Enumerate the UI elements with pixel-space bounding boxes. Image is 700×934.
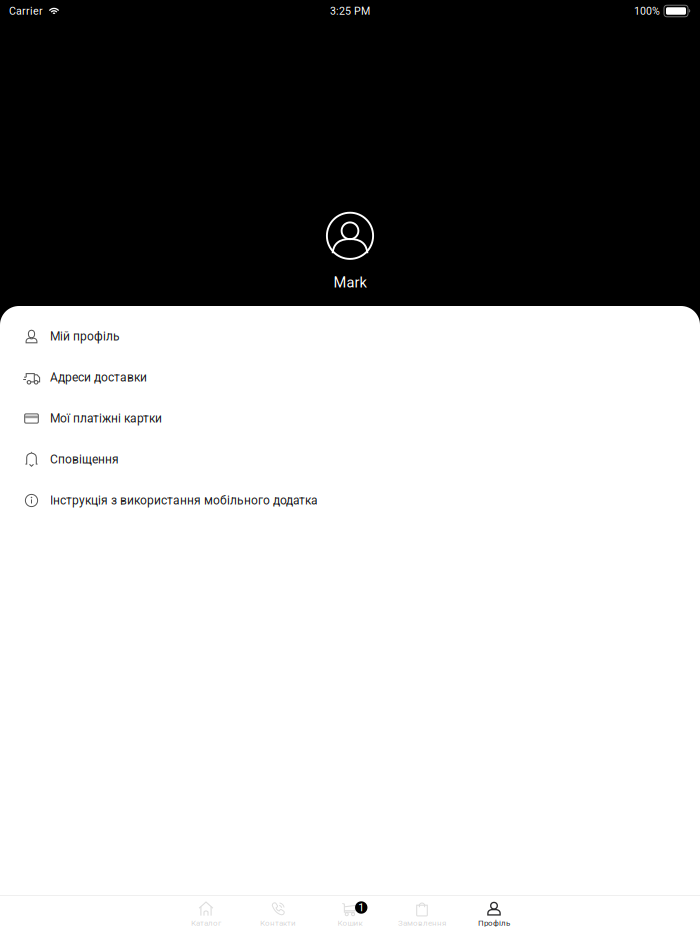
button[interactable]: Інструкція з використання мобільного дод… [0,480,700,521]
staticText: 1 [358,901,364,914]
button[interactable]: Замовлення [386,895,458,934]
staticText: Каталог [191,918,221,928]
button[interactable]: Контакти [242,895,314,934]
staticText: Carrier [9,5,43,17]
staticText: 3:25 PM [330,5,370,17]
staticText: Адреси доставки [50,370,147,385]
staticText: Контакти [260,918,296,928]
staticText: Профіль [478,918,510,928]
staticText: Мій профіль [50,329,120,344]
button[interactable]: Каталог [170,895,242,934]
staticText: Кошик [337,918,362,928]
staticText: Замовлення [398,918,446,928]
button[interactable]: Мої платіжні картки [0,398,700,439]
staticText: Інструкція з використання мобільного дод… [50,493,318,508]
button[interactable]: Мій профіль [0,316,700,357]
staticText: Мої платіжні картки [50,411,162,426]
button[interactable]: Сповіщення [0,439,700,480]
button[interactable]: Профіль [458,895,530,934]
staticText: 100% [634,5,660,17]
button[interactable]: Адреси доставки [0,357,700,398]
staticText: Mark [333,274,366,291]
button[interactable]: 1 [314,895,386,934]
staticText: Сповіщення [50,452,119,467]
